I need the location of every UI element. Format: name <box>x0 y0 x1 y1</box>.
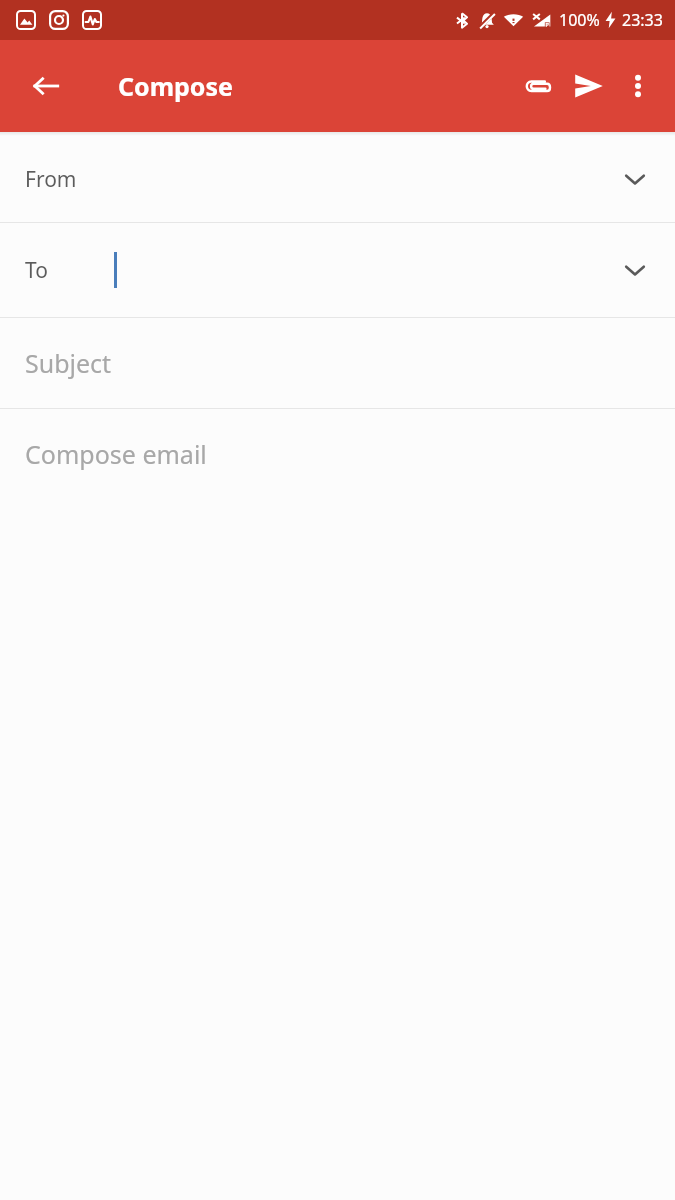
staticText: 23:33 <box>622 9 663 31</box>
button[interactable]: Expand <box>619 254 651 286</box>
button[interactable]: Attach file <box>511 60 563 112</box>
button[interactable]: Subject <box>0 318 675 408</box>
button[interactable]: To <box>0 223 675 317</box>
staticText: To <box>25 256 48 285</box>
button[interactable]: Back <box>22 62 70 110</box>
staticText: 100% <box>559 9 600 31</box>
staticText: Subject <box>25 346 112 380</box>
button[interactable]: Expand <box>619 163 651 195</box>
button[interactable]: Compose email <box>0 409 675 1200</box>
staticText: Compose <box>118 69 233 103</box>
button[interactable]: Send <box>563 60 615 112</box>
button[interactable]: More options <box>615 63 661 109</box>
staticText: Compose email <box>25 437 207 471</box>
button[interactable]: From <box>0 136 675 222</box>
staticText: From <box>25 165 77 194</box>
